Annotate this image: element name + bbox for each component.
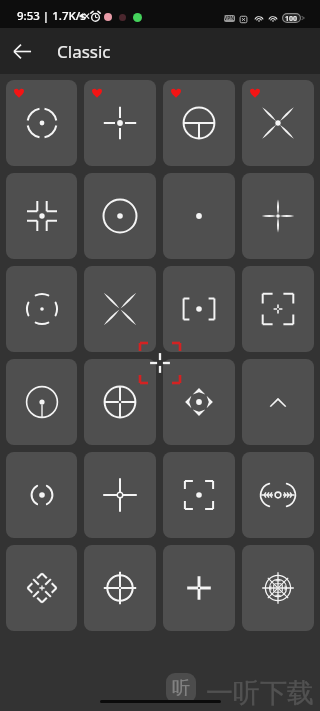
button[interactable]: Back: [6, 35, 38, 67]
staticText: 9:53 | 1.7K/s: [17, 8, 86, 24]
button[interactable]: Crosshair 12: [242, 266, 314, 352]
button[interactable]: Crosshair 13: [6, 359, 77, 445]
staticText: Classic: [57, 40, 111, 63]
button[interactable]: Crosshair 15: [163, 359, 235, 445]
button[interactable]: Crosshair 4: [242, 80, 314, 166]
button[interactable]: Crosshair 20: [242, 452, 314, 538]
button[interactable]: Crosshair 21: [6, 545, 77, 631]
button[interactable]: Crosshair 8: [242, 173, 314, 259]
staticText: 听: [172, 677, 190, 700]
button[interactable]: Crosshair 19: [163, 452, 235, 538]
staticText: 一听下载: [206, 676, 314, 710]
button[interactable]: Crosshair 1: [6, 80, 77, 166]
button[interactable]: Crosshair 2: [84, 80, 156, 166]
button[interactable]: Crosshair 16: [242, 359, 314, 445]
button[interactable]: Crosshair 17: [6, 452, 77, 538]
button[interactable]: Crosshair 11: [163, 266, 235, 352]
button[interactable]: Crosshair 22: [84, 545, 156, 631]
button[interactable]: Crosshair 6: [84, 173, 156, 259]
button[interactable]: Crosshair 14: [84, 359, 156, 445]
staticText: 100: [285, 14, 298, 22]
button[interactable]: Crosshair 3: [163, 80, 235, 166]
button[interactable]: Crosshair 10: [84, 266, 156, 352]
button[interactable]: Crosshair 5: [6, 173, 77, 259]
button[interactable]: Crosshair 7: [163, 173, 235, 259]
staticText: VPN: [224, 15, 235, 22]
button[interactable]: Crosshair 24: [242, 545, 314, 631]
button[interactable]: Crosshair 23: [163, 545, 235, 631]
button[interactable]: Crosshair 9: [6, 266, 77, 352]
button[interactable]: Crosshair 18: [84, 452, 156, 538]
